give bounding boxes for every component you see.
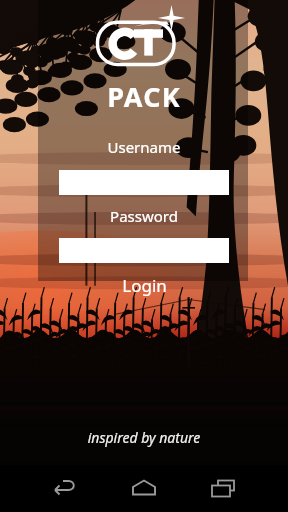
- staticText: inspired by nature: [0, 428, 288, 447]
- staticText: Password: [0, 206, 288, 226]
- staticText: PACK: [0, 78, 288, 115]
- staticText: Login: [122, 274, 167, 297]
- button[interactable]: Login: [59, 273, 229, 298]
- button[interactable]: Recent apps: [194, 465, 252, 512]
- button[interactable]: Home: [115, 465, 173, 512]
- staticText: Username: [0, 137, 288, 157]
- button[interactable]: Back: [36, 465, 94, 512]
